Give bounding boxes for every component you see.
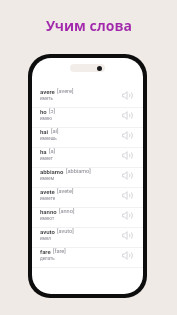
staticText: имел — [40, 236, 51, 241]
staticText: hanno — [40, 208, 57, 215]
staticText: ho — [40, 108, 47, 115]
staticText: [ai] — [51, 128, 59, 135]
staticText: [abbiamo] — [66, 168, 91, 175]
button[interactable]: Play pronunciation — [121, 229, 134, 242]
staticText: [fare] — [53, 248, 66, 255]
button[interactable]: Play pronunciation — [121, 189, 134, 202]
staticText: имеете — [40, 196, 56, 201]
staticText: Учим слова — [46, 16, 132, 35]
staticText: иметь — [40, 96, 53, 101]
staticText: [ɔ] — [49, 108, 55, 115]
staticText: avere — [40, 88, 55, 95]
staticText: avuto — [40, 228, 55, 235]
button[interactable]: Play pronunciation — [121, 249, 134, 262]
staticText: [avete] — [57, 188, 74, 195]
staticText: имеют — [40, 216, 55, 221]
button[interactable]: Play pronunciation — [121, 129, 134, 142]
button[interactable]: Play pronunciation — [121, 89, 134, 102]
button[interactable]: Play pronunciation — [121, 169, 134, 182]
button[interactable]: fare — [32, 248, 143, 267]
button[interactable]: abbiamo — [32, 168, 143, 187]
button[interactable]: ha — [32, 148, 143, 167]
button[interactable]: avuto — [32, 228, 143, 247]
staticText: делать — [40, 256, 55, 261]
staticText: [a] — [49, 148, 56, 155]
staticText: [avere] — [57, 88, 74, 95]
staticText: fare — [40, 248, 51, 255]
staticText: avete — [40, 188, 55, 195]
button[interactable]: ho — [32, 108, 143, 127]
staticText: [avuto] — [57, 228, 74, 235]
staticText: abbiamo — [40, 168, 64, 175]
button[interactable]: Play pronunciation — [121, 149, 134, 162]
staticText: [anno] — [59, 208, 75, 215]
staticText: имею — [40, 116, 52, 121]
button[interactable]: hai — [32, 128, 143, 147]
staticText: hai — [40, 128, 49, 135]
staticText: имеем — [40, 176, 55, 181]
button[interactable]: hanno — [32, 208, 143, 227]
button[interactable]: Play pronunciation — [121, 209, 134, 222]
staticText: имеешь — [40, 136, 57, 141]
button[interactable]: avete — [32, 188, 143, 207]
staticText: имеет — [40, 156, 53, 161]
button[interactable]: avere — [32, 88, 143, 107]
button[interactable]: Play pronunciation — [121, 109, 134, 122]
staticText: ha — [40, 148, 47, 155]
